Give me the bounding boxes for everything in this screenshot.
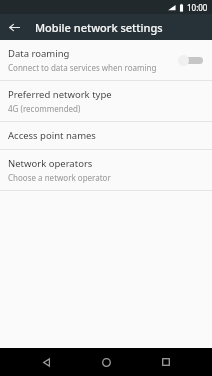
staticText: 4G (recommended) bbox=[8, 103, 81, 114]
button[interactable]: Data roaming bbox=[0, 40, 212, 80]
staticText: Preferred network type bbox=[8, 88, 112, 101]
button[interactable]: Home bbox=[92, 348, 120, 376]
staticText: Access point names bbox=[8, 129, 96, 142]
button[interactable]: Network operators bbox=[0, 150, 212, 190]
button[interactable]: Back bbox=[32, 348, 60, 376]
staticText: Data roaming bbox=[8, 47, 70, 60]
staticText: 10:00 bbox=[187, 2, 208, 13]
staticText: Network operators bbox=[8, 157, 93, 170]
button[interactable]: Access point names bbox=[0, 122, 212, 149]
staticText: Mobile network settings bbox=[35, 20, 163, 35]
button[interactable]: Data roaming toggle bbox=[178, 53, 204, 67]
staticText: Connect to data services when roaming bbox=[8, 62, 157, 73]
button[interactable]: Back bbox=[4, 17, 24, 37]
staticText: Choose a network operator bbox=[8, 172, 111, 183]
button[interactable]: Preferred network type bbox=[0, 81, 212, 121]
button[interactable]: Recents bbox=[152, 348, 180, 376]
